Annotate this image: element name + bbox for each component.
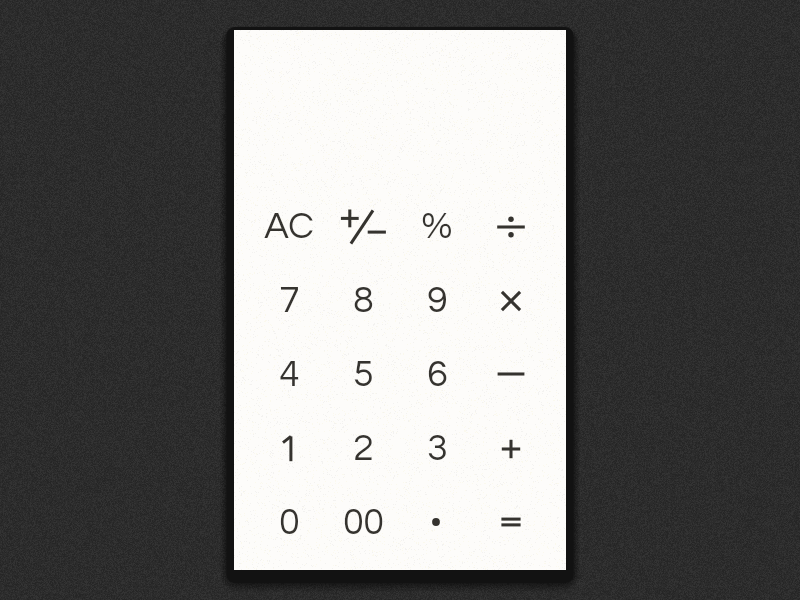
button[interactable]: 5	[326, 338, 400, 412]
button[interactable]: 2	[326, 412, 400, 486]
staticText: 2	[353, 430, 374, 468]
staticText: 0	[279, 504, 300, 542]
button[interactable]: 00	[326, 486, 400, 560]
staticText: 6	[427, 356, 448, 394]
staticText: 3	[427, 430, 448, 468]
button[interactable]: 4	[252, 338, 326, 412]
button[interactable]: 7	[252, 264, 326, 338]
button[interactable]: Add	[474, 412, 548, 486]
button[interactable]: 0	[252, 486, 326, 560]
staticText: 4	[279, 356, 300, 394]
button[interactable]: 6	[400, 338, 474, 412]
button[interactable]: Equals	[474, 485, 548, 559]
button[interactable]: 8	[326, 264, 400, 338]
staticText: 5	[353, 356, 374, 394]
staticText: 8	[353, 282, 374, 320]
button[interactable]: AC	[252, 190, 326, 264]
staticText: 00	[343, 504, 384, 542]
button[interactable]: 1	[252, 412, 326, 486]
button[interactable]: Divide	[474, 190, 548, 264]
button[interactable]: 3	[400, 412, 474, 486]
button[interactable]: Multiply	[474, 264, 548, 338]
staticText: %	[421, 208, 453, 246]
staticText: AC	[264, 208, 314, 246]
button[interactable]: Toggle sign, plus or minus	[326, 190, 400, 264]
staticText: 7	[279, 282, 300, 320]
button[interactable]: Decimal point	[399, 485, 473, 559]
button[interactable]: %	[400, 190, 474, 264]
staticText: 9	[427, 282, 448, 320]
button[interactable]: Subtract	[474, 337, 548, 411]
button[interactable]: 9	[400, 264, 474, 338]
